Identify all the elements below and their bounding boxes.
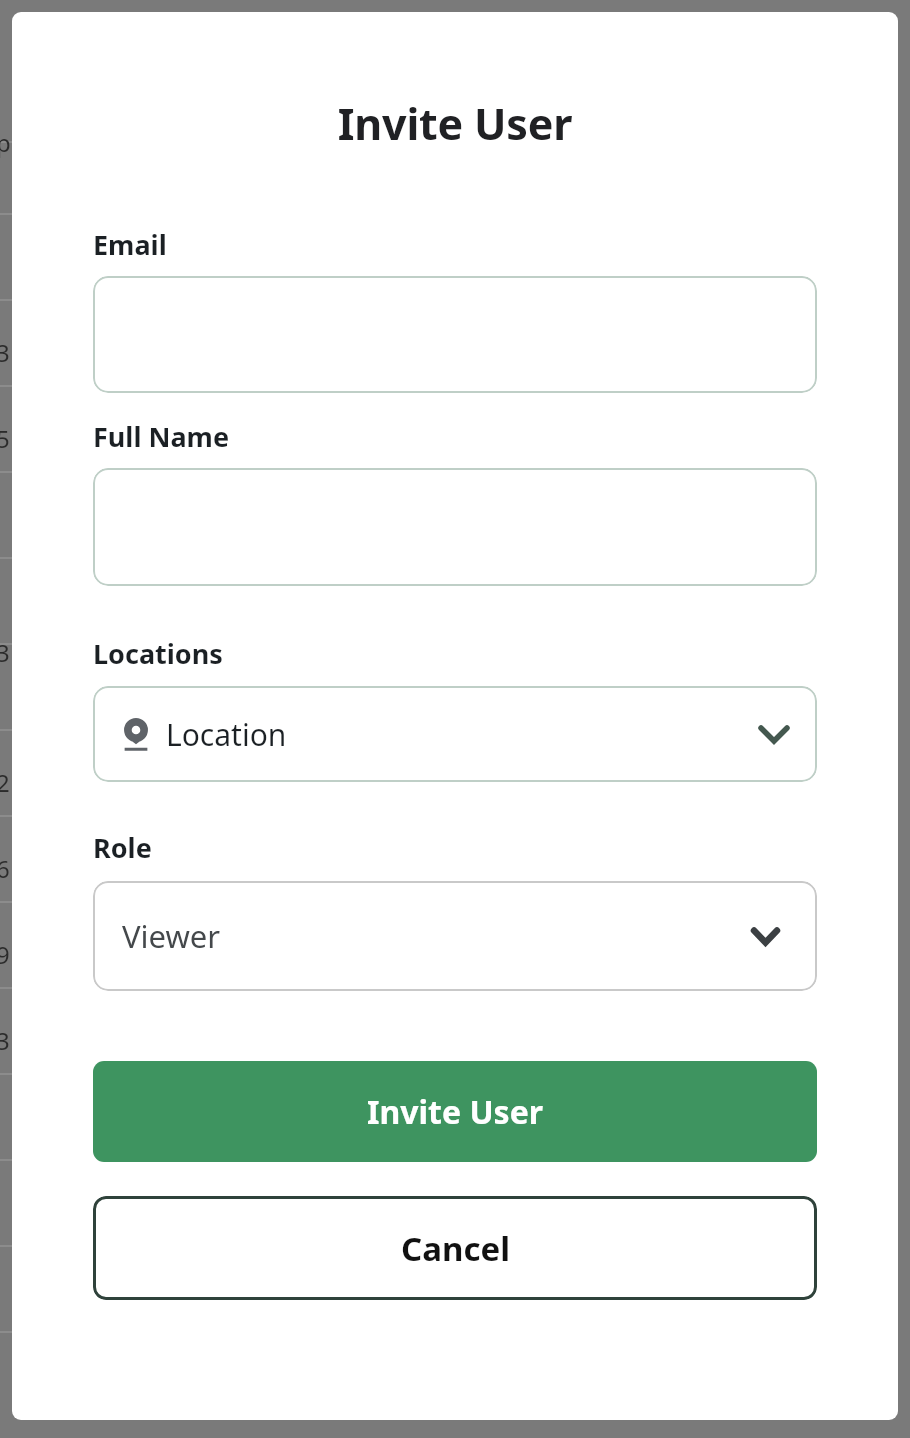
button[interactable]: Viewer [93, 881, 817, 991]
staticText: 9 [0, 938, 8, 971]
staticText: p [0, 126, 8, 159]
staticText: Email [93, 226, 167, 263]
staticText: 3 [0, 636, 8, 669]
staticText: Invite User [367, 1090, 544, 1134]
staticText: Viewer [122, 915, 221, 957]
staticText: Invite User [12, 94, 898, 153]
staticText: Role [93, 829, 152, 866]
button[interactable]: Cancel [93, 1196, 817, 1300]
staticText: 2 [0, 766, 8, 799]
staticText: 3 [0, 336, 8, 369]
button[interactable] [93, 276, 817, 393]
staticText: 3 [0, 1024, 8, 1057]
staticText: 6 [0, 852, 8, 885]
staticText: Cancel [401, 1226, 510, 1271]
staticText: 5 [0, 422, 8, 455]
staticText: Full Name [93, 418, 230, 455]
staticText: Locations [93, 635, 223, 672]
button[interactable]: Invite User [93, 1061, 817, 1162]
staticText: Location [166, 714, 287, 755]
button[interactable]: Location [93, 686, 817, 782]
button[interactable] [93, 468, 817, 586]
